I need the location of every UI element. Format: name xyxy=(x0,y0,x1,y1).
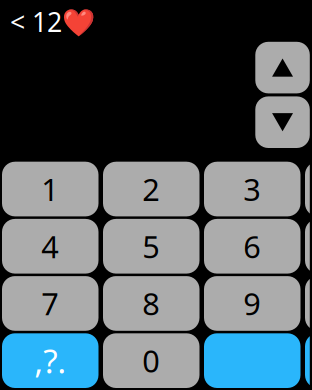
button[interactable]: 3 xyxy=(204,162,300,216)
button[interactable]: 1 xyxy=(2,162,98,216)
button[interactable]: 6 xyxy=(204,219,300,274)
button[interactable]: < 12❤️ xyxy=(10,4,95,39)
button[interactable]: Scroll down xyxy=(255,96,310,148)
staticText: 0 xyxy=(142,340,160,381)
button[interactable]: Scroll up xyxy=(255,42,310,93)
button[interactable]: 4 xyxy=(2,219,98,274)
staticText: 1 xyxy=(41,169,59,209)
staticText: 5 xyxy=(142,226,160,267)
staticText: 4 xyxy=(41,226,59,267)
button[interactable]: 8 xyxy=(103,276,199,331)
button[interactable]: 7 xyxy=(2,276,98,331)
button[interactable]: Delete xyxy=(204,333,300,388)
button[interactable]: More keys xyxy=(305,219,312,274)
staticText: 9 xyxy=(243,283,261,324)
button[interactable]: 0 xyxy=(103,333,199,388)
button[interactable]: More keys xyxy=(305,333,312,388)
button[interactable]: 2 xyxy=(103,162,199,216)
button[interactable]: 5 xyxy=(103,219,199,274)
button[interactable]: ,?. xyxy=(2,333,98,388)
button[interactable]: More keys xyxy=(305,162,312,216)
staticText: 8 xyxy=(142,283,160,324)
staticText: 7 xyxy=(41,283,59,324)
staticText: 3 xyxy=(243,169,261,209)
staticText: < 12❤️ xyxy=(10,4,95,39)
staticText: 6 xyxy=(243,226,261,267)
button[interactable]: More keys xyxy=(305,276,312,331)
staticText: ,?. xyxy=(34,338,66,383)
button[interactable]: 9 xyxy=(204,276,300,331)
staticText: 2 xyxy=(142,169,160,209)
